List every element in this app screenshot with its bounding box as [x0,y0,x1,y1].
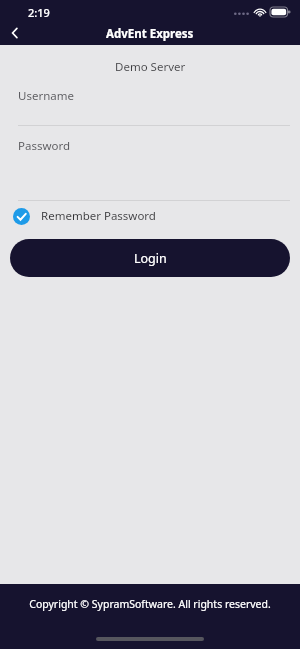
button[interactable]: Back [0,22,30,43]
button[interactable]: Password [0,126,300,172]
button[interactable]: Login [10,239,290,277]
staticText: Demo Server [115,59,186,75]
button[interactable]: Remember Password [0,201,300,231]
staticText: Copyright © SypramSoftware. All rights r… [0,597,300,611]
staticText: Password [18,138,71,154]
staticText: Username [18,88,74,104]
staticText: Login [134,250,167,267]
staticText: Remember Password [41,208,156,224]
staticText: 2:19 [28,5,50,20]
button[interactable]: Username [0,79,300,125]
staticText: AdvEnt Express [106,26,194,42]
